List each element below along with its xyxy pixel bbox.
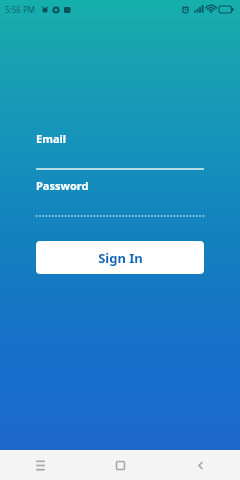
- button[interactable]: Back: [160, 450, 240, 480]
- staticText: Password: [36, 178, 89, 193]
- button[interactable]: Email: [36, 131, 204, 170]
- staticText: 5:56 PM: [5, 4, 36, 15]
- staticText: Email: [36, 131, 67, 146]
- button[interactable]: Password: [36, 178, 204, 217]
- button[interactable]: Sign In: [36, 241, 204, 274]
- button[interactable]: Home: [80, 450, 160, 480]
- staticText: Sign In: [98, 249, 143, 267]
- button[interactable]: Recent apps: [0, 450, 80, 480]
